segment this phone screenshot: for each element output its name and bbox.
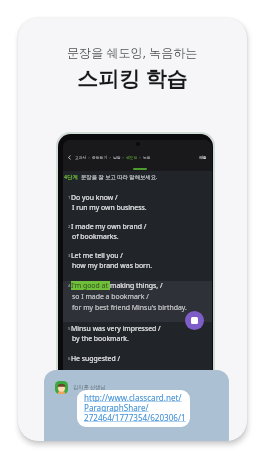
- staticText: 6: [68, 356, 71, 362]
- staticText: 1: [68, 195, 71, 201]
- staticText: >: [121, 155, 126, 160]
- button[interactable]: http://www.classcard.net/: [77, 390, 190, 427]
- staticText: of bookmarks.: [72, 232, 119, 241]
- button[interactable]: 제출: [197, 155, 209, 160]
- staticText: 5: [68, 326, 71, 332]
- staticText: how my brand was born.: [72, 261, 153, 270]
- button[interactable]: 5: [63, 324, 212, 344]
- staticText: 문장을 잘 보고 따라 말해보세요.: [81, 173, 158, 180]
- staticText: >: [108, 155, 113, 160]
- staticText: http://www.classcard.net/: [84, 392, 182, 402]
- button[interactable]: 6: [63, 354, 212, 364]
- button[interactable]: Stop recording: [185, 311, 204, 330]
- staticText: so I made a bookmark /: [72, 292, 149, 301]
- staticText: 낱말: [113, 155, 121, 160]
- staticText: Do you know /: [71, 193, 118, 202]
- button[interactable]: 4: [63, 281, 212, 314]
- button[interactable]: 3: [63, 251, 212, 271]
- staticText: 3: [68, 253, 71, 259]
- staticText: 4단계: [64, 173, 78, 180]
- staticText: Minsu was very impressed /: [71, 324, 161, 333]
- staticText: for my best friend Minsu's birthday.: [72, 303, 187, 312]
- staticText: 2: [68, 224, 71, 230]
- button[interactable]: Back: [66, 154, 73, 161]
- staticText: He suggested /: [71, 354, 120, 363]
- button[interactable]: 2: [63, 222, 212, 242]
- staticText: 녹음: [143, 155, 151, 160]
- button[interactable]: 1: [63, 193, 212, 213]
- staticText: I run my own business.: [72, 203, 147, 212]
- staticText: 쉐도잉: [126, 155, 138, 160]
- staticText: I made my own brand /: [71, 222, 147, 231]
- staticText: 272464/1777354/620306/1: [84, 412, 186, 422]
- staticText: 스피킹 학습: [77, 64, 188, 93]
- staticText: 문장을 쉐도잉, 녹음하는: [67, 44, 198, 61]
- staticText: >: [87, 155, 92, 160]
- staticText: 제출: [199, 155, 207, 160]
- staticText: ParagraphShare/: [84, 402, 149, 412]
- staticText: by the bookmark.: [72, 334, 129, 343]
- staticText: 김지훈 선생님: [73, 383, 106, 390]
- staticText: 교과서: [75, 155, 87, 160]
- staticText: I'm good at: [71, 281, 110, 290]
- staticText: Let me tell you /: [71, 251, 123, 260]
- staticText: 4: [68, 283, 71, 289]
- staticText: >: [138, 155, 143, 160]
- staticText: 중등듣기: [92, 155, 108, 160]
- staticText: making things, /: [110, 281, 163, 290]
